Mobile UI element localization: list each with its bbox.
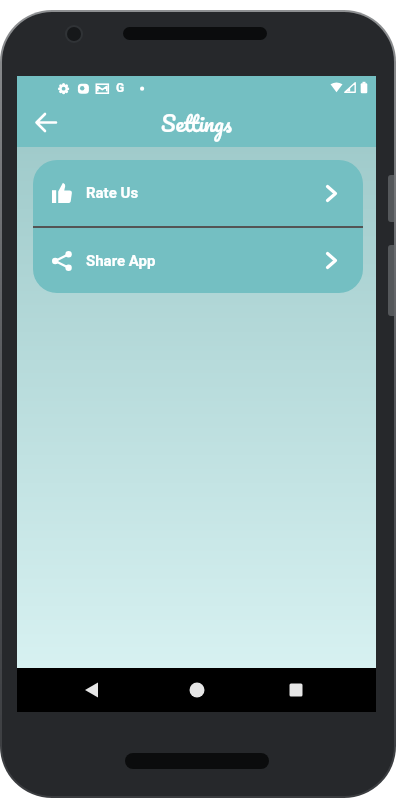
staticText: G [116,81,125,95]
staticText: Rate Us [86,184,139,202]
staticText: Settings [161,105,232,142]
button[interactable]: Share App [33,228,363,293]
staticText: Share App [86,252,156,270]
button[interactable]: Rate Us [33,160,363,226]
button[interactable] [30,106,64,140]
